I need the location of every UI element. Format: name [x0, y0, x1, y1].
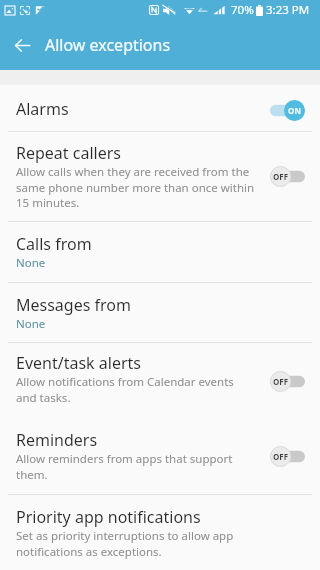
button[interactable]: Switch off: [270, 446, 305, 467]
button[interactable]: Calls from: [0, 222, 320, 282]
staticText: Event/task alerts: [16, 352, 141, 374]
staticText: Set as priority interruptions to allow a…: [16, 528, 234, 559]
button[interactable]: Alarms: [0, 85, 320, 131]
staticText: OFF: [270, 376, 291, 387]
staticText: Allow notifications from Calendar events…: [16, 374, 234, 405]
button[interactable]: Repeat callers: [0, 132, 320, 221]
button[interactable]: Priority app notifications: [0, 495, 320, 570]
staticText: 3:23 PM: [266, 2, 310, 18]
button[interactable]: Switch off: [270, 371, 305, 392]
staticText: 70%: [231, 2, 254, 18]
staticText: OFF: [270, 171, 291, 182]
staticText: Messages from: [16, 294, 131, 316]
button[interactable]: Reminders: [0, 419, 320, 494]
staticText: Allow exceptions: [45, 34, 171, 56]
staticText: Allow calls when they are received from …: [16, 164, 255, 210]
button[interactable]: Messages from: [0, 283, 320, 342]
button[interactable]: Switch on: [270, 100, 305, 121]
staticText: OFF: [270, 451, 291, 462]
staticText: Allow reminders from apps that support t…: [16, 451, 233, 482]
staticText: ON: [284, 105, 305, 116]
staticText: Repeat callers: [16, 142, 121, 164]
button[interactable]: Navigate up: [8, 30, 38, 60]
staticText: None: [16, 316, 46, 332]
staticText: None: [16, 255, 46, 271]
staticText: Alarms: [16, 98, 69, 120]
button[interactable]: Event/task alerts: [0, 343, 320, 419]
staticText: Reminders: [16, 429, 98, 451]
button[interactable]: Switch off: [270, 166, 305, 187]
staticText: Calls from: [16, 233, 92, 255]
staticText: Priority app notifications: [16, 506, 201, 528]
